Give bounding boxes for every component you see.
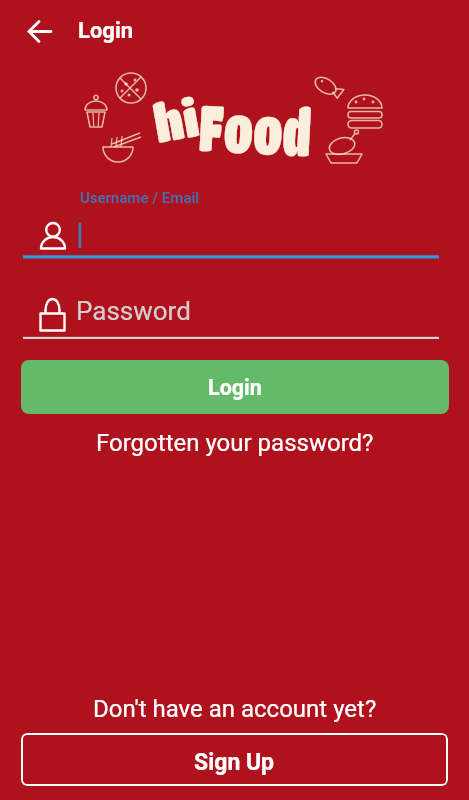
button[interactable] — [23, 215, 439, 260]
staticText: Sign Up — [194, 749, 275, 776]
button[interactable]: Sign Up — [21, 733, 448, 786]
button[interactable]: Forgotten your password? — [96, 429, 374, 457]
staticText: Food — [197, 89, 313, 168]
button[interactable] — [23, 295, 439, 340]
staticText: Password — [76, 296, 191, 326]
staticText: Don't have an account yet? — [93, 695, 377, 723]
button[interactable] — [22, 14, 58, 50]
staticText: hi — [149, 86, 203, 153]
button[interactable]: Login — [21, 360, 449, 414]
staticText: Username / Email — [80, 189, 200, 207]
staticText: Login — [208, 375, 262, 400]
staticText: Forgotten your password? — [96, 429, 374, 457]
staticText: Login — [78, 18, 134, 44]
